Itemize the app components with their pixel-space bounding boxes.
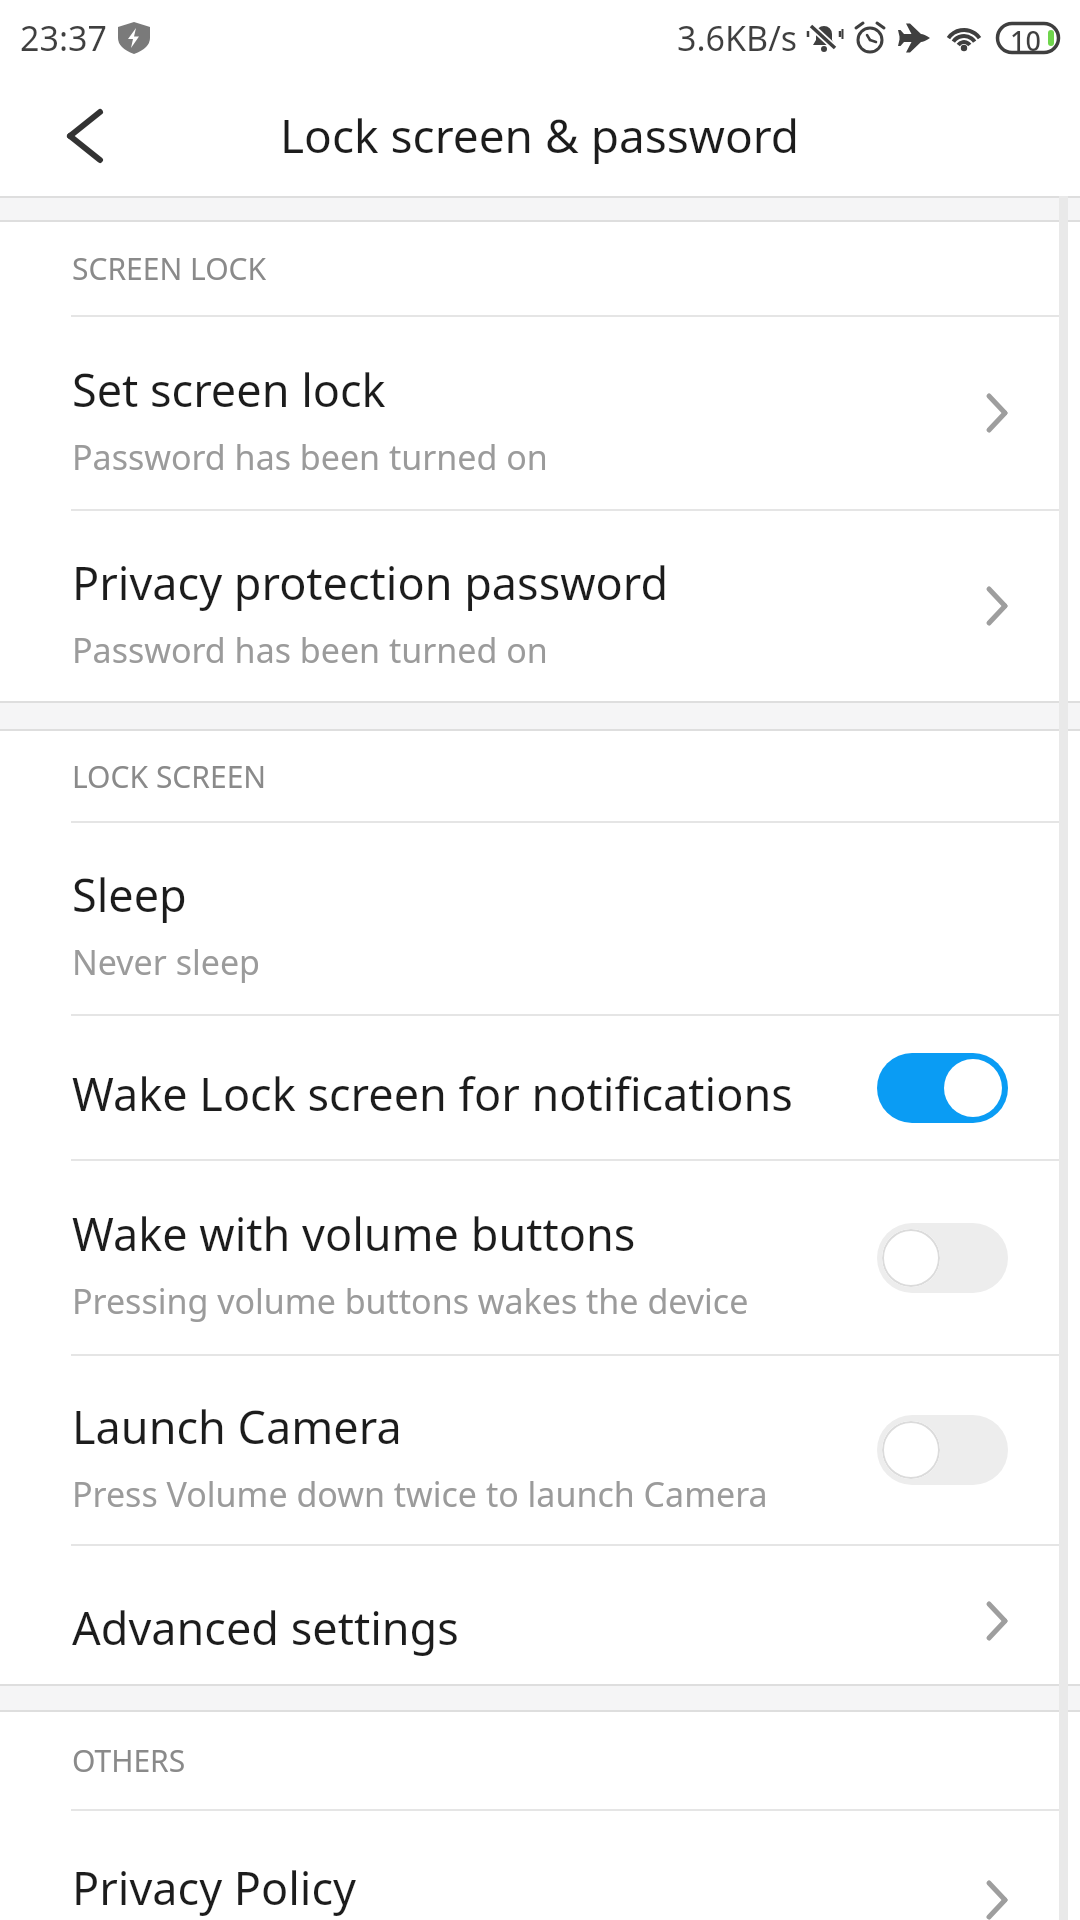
button[interactable] [877, 1415, 1008, 1485]
button[interactable] [877, 1053, 1008, 1123]
staticText: Advanced settings [72, 1597, 459, 1658]
button[interactable]: Advanced settings [0, 1546, 1080, 1684]
staticText: Press Volume down twice to launch Camera [72, 1471, 768, 1517]
button[interactable]: Wake with volume buttons [0, 1161, 1080, 1354]
button[interactable]: Privacy protection password [0, 511, 1080, 701]
staticText: Never sleep [72, 939, 260, 985]
staticText: Set screen lock [72, 359, 386, 420]
staticText: Sleep [72, 864, 187, 925]
staticText: OTHERS [72, 1740, 186, 1781]
button[interactable]: Launch Camera [0, 1356, 1080, 1544]
staticText: LOCK SCREEN [72, 756, 267, 797]
staticText: Lock screen & password [280, 104, 800, 167]
button[interactable]: Privacy Policy [0, 1811, 1080, 1920]
staticText: Privacy Policy [72, 1857, 356, 1918]
staticText: Password has been turned on [72, 627, 548, 673]
staticText: Privacy protection password [72, 552, 669, 613]
staticText: 3.6KB/s [677, 15, 798, 61]
staticText: Pressing volume buttons wakes the device [72, 1278, 749, 1324]
staticText: 23:37 [20, 15, 107, 61]
button[interactable] [64, 108, 106, 164]
button[interactable] [877, 1223, 1008, 1293]
staticText: Wake with volume buttons [72, 1203, 636, 1264]
button[interactable]: Set screen lock [0, 317, 1080, 509]
staticText: Password has been turned on [72, 434, 548, 480]
staticText: SCREEN LOCK [72, 248, 267, 289]
staticText: Wake Lock screen for notifications [72, 1063, 793, 1124]
staticText: 10 [1010, 22, 1041, 54]
button[interactable]: Sleep [0, 823, 1080, 1014]
button[interactable]: Wake Lock screen for notifications [0, 1016, 1080, 1159]
staticText: Launch Camera [72, 1396, 402, 1457]
